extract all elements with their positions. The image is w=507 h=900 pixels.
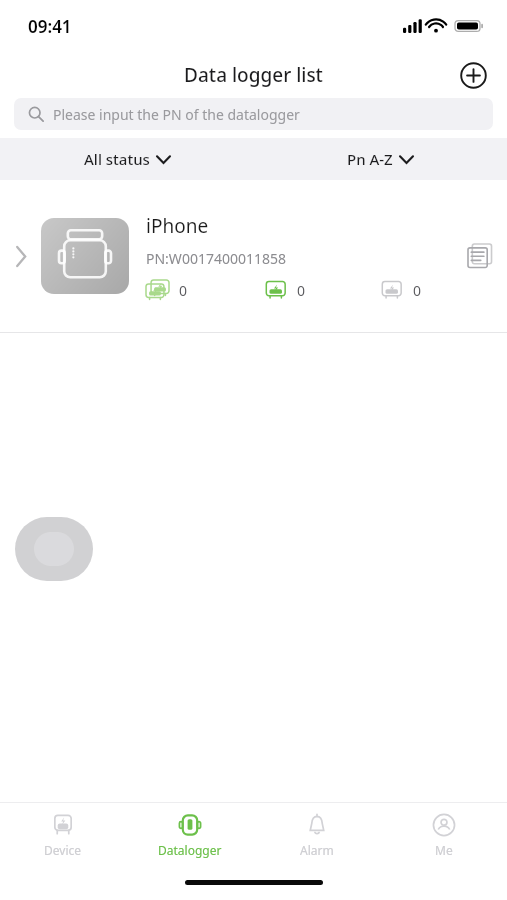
button[interactable]: Alarm	[253, 802, 380, 872]
button[interactable]: Pn A-Z	[337, 143, 423, 175]
staticText: PN:W0017400011858	[146, 249, 286, 268]
staticText: iPhone	[146, 213, 209, 239]
button[interactable]: iPhone	[0, 180, 507, 332]
staticText: All status	[84, 149, 150, 169]
button[interactable]: Assistive menu	[15, 517, 93, 581]
button[interactable]: Device	[0, 802, 126, 872]
button[interactable]: Please input the PN of the datalogger	[14, 98, 493, 130]
staticText: Data logger list	[184, 62, 323, 88]
staticText: Please input the PN of the datalogger	[53, 105, 300, 124]
staticText: Pn A-Z	[347, 149, 393, 169]
button[interactable]: Datalogger	[126, 802, 253, 872]
staticText: 09:41	[28, 15, 72, 38]
button[interactable]: Me	[380, 802, 507, 872]
staticText: 0	[297, 281, 306, 300]
button[interactable]: Report	[453, 180, 507, 332]
staticText: Me	[435, 842, 453, 858]
staticText: 0	[413, 281, 422, 300]
staticText: Device	[44, 842, 82, 858]
button[interactable]: All status	[74, 143, 180, 175]
staticText: 0	[179, 281, 188, 300]
staticText: Alarm	[300, 842, 334, 858]
button[interactable]: Add datalogger	[453, 55, 493, 95]
staticText: Datalogger	[158, 842, 222, 858]
